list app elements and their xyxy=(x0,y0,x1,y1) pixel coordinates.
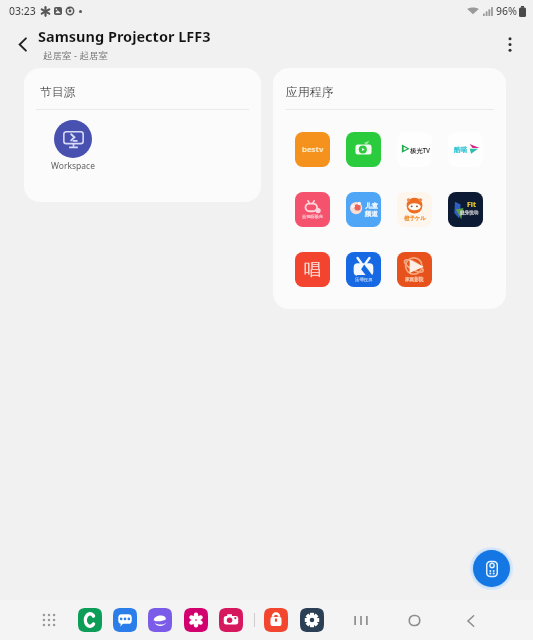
staticText: 乐播投屏 xyxy=(355,277,373,283)
staticText: 起居室 - 起居室 xyxy=(43,49,108,62)
button[interactable]: App 10 xyxy=(397,252,432,287)
button[interactable]: App 1 xyxy=(346,132,381,167)
button[interactable]: All apps xyxy=(37,608,61,632)
button[interactable]: Home xyxy=(399,605,430,636)
button[interactable]: App 5 xyxy=(264,608,288,632)
button[interactable]: App 3 xyxy=(184,608,208,632)
button[interactable]: App 4 xyxy=(295,192,330,227)
button[interactable]: App 2 xyxy=(148,608,172,632)
staticText: 家庭影院 xyxy=(405,277,424,283)
button[interactable]: App 4 xyxy=(219,608,243,632)
staticText: 唱 xyxy=(304,259,321,280)
button[interactable]: App 1 xyxy=(113,608,137,632)
button[interactable]: App 9 xyxy=(346,252,381,287)
button[interactable]: App 6 xyxy=(397,192,432,227)
button[interactable]: Back xyxy=(7,29,38,60)
staticText: 应用程序 xyxy=(286,85,334,100)
button[interactable]: App 8 xyxy=(295,252,330,287)
button[interactable]: App 0 xyxy=(295,132,330,167)
button[interactable]: App 0 xyxy=(78,608,102,632)
button[interactable]: Remote control xyxy=(473,550,510,587)
staticText: Fit xyxy=(467,200,476,210)
staticText: 云视听极光 xyxy=(302,214,323,219)
staticText: 极光TV xyxy=(410,146,430,154)
button[interactable]: App 3 xyxy=(448,132,483,167)
button[interactable]: Recents xyxy=(345,605,376,636)
button[interactable]: App 5 xyxy=(346,192,381,227)
button[interactable]: More options xyxy=(494,29,525,60)
staticText: 健身悦动 xyxy=(460,210,479,216)
staticText: 儿童 频道 xyxy=(365,202,378,218)
staticText: bestv xyxy=(302,144,324,155)
button[interactable]: App 6 xyxy=(300,608,324,632)
staticText: Workspace xyxy=(51,160,95,172)
button[interactable]: App 2 xyxy=(397,132,432,167)
button[interactable]: App 7 xyxy=(448,192,483,227)
button[interactable]: Back xyxy=(455,605,486,636)
staticText: 酷喵 xyxy=(454,146,467,154)
button[interactable]: Workspace xyxy=(29,120,117,172)
staticText: 96% xyxy=(496,4,517,18)
staticText: 橙子ケル xyxy=(404,215,426,222)
staticText: 节目源 xyxy=(40,85,76,100)
staticText: 03:23 xyxy=(9,4,36,18)
staticText: Samsung Projector LFF3 xyxy=(38,26,211,46)
